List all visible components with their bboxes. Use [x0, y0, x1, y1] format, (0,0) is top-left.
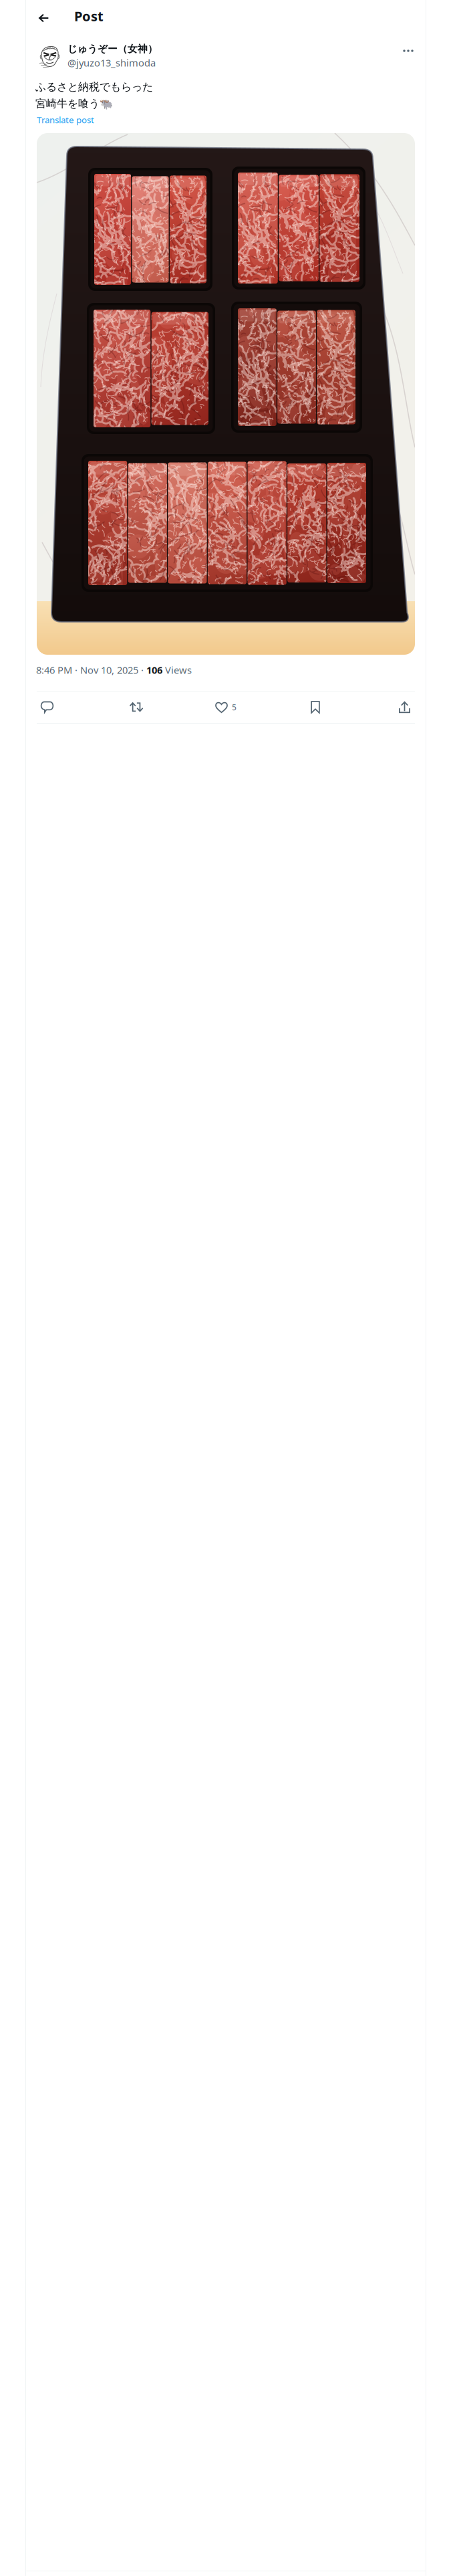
button[interactable]: Back [32, 7, 55, 29]
button[interactable]: 5 [215, 691, 236, 723]
button[interactable]: Bookmark [305, 691, 326, 723]
staticText: 5 [232, 702, 236, 712]
staticText: Views [162, 663, 192, 676]
staticText: Translate post [37, 114, 94, 126]
button[interactable]: Repost [126, 691, 147, 723]
button[interactable]: Photo of wagyu beef [37, 133, 415, 655]
button[interactable]: Share [394, 691, 415, 723]
staticText: じゅうぞー（女神） [67, 43, 158, 55]
button[interactable]: More [398, 41, 418, 61]
button[interactable]: Translate post [37, 114, 117, 126]
staticText: ふるさと納税でもらった [35, 80, 153, 93]
button[interactable]: Reply [37, 691, 57, 723]
staticText: Post [74, 7, 104, 25]
staticText: 宮崎牛を喰う🐃 [35, 97, 113, 110]
staticText: @jyuzo13_shimoda [67, 56, 156, 69]
button[interactable]: Post [74, 8, 114, 24]
button[interactable]: Profile photo [37, 43, 63, 70]
staticText: 8:46 PM · Nov 10, 2025 · [36, 663, 146, 676]
button[interactable]: じゅうぞー（女神） [67, 43, 228, 69]
staticText: 106 [146, 663, 162, 676]
